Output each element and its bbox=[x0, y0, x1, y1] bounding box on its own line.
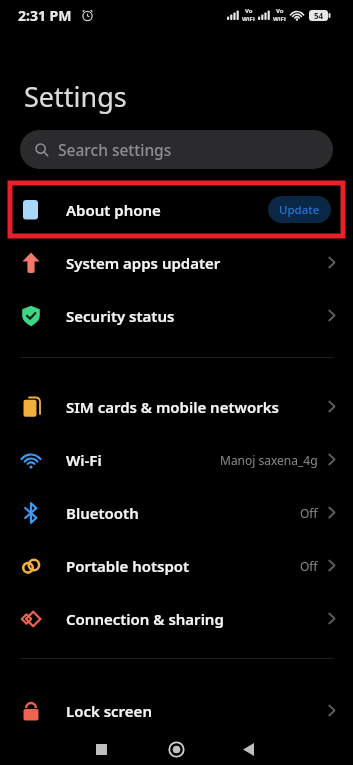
button[interactable]: Security status bbox=[0, 289, 353, 342]
staticText: Security status bbox=[66, 306, 175, 326]
staticText: 2:31 PM bbox=[18, 6, 72, 25]
button[interactable]: Search settings bbox=[20, 130, 333, 169]
button[interactable]: Connection & sharing bbox=[0, 592, 353, 645]
staticText: Connection & sharing bbox=[66, 609, 224, 629]
staticText: Update bbox=[279, 202, 320, 218]
staticText: Manoj saxena_4g bbox=[220, 452, 318, 468]
staticText: Search settings bbox=[58, 139, 172, 160]
staticText: System apps updater bbox=[66, 253, 221, 273]
staticText: Settings bbox=[24, 78, 127, 115]
staticText: Lock screen bbox=[66, 701, 152, 721]
staticText: Off bbox=[300, 505, 318, 521]
staticText: Portable hotspot bbox=[66, 556, 190, 576]
staticText: Vo bbox=[245, 7, 253, 15]
staticText: SIM cards & mobile networks bbox=[66, 397, 279, 417]
button[interactable]: Portable hotspot bbox=[0, 539, 353, 592]
staticText: Off bbox=[300, 558, 318, 574]
staticText: WiFi bbox=[273, 15, 286, 23]
staticText: WiFi bbox=[242, 15, 255, 23]
staticText: 54 bbox=[314, 10, 324, 21]
button[interactable]: About phone bbox=[0, 183, 353, 236]
button[interactable] bbox=[81, 737, 121, 765]
staticText: Bluetooth bbox=[66, 503, 139, 523]
button[interactable]: Lock screen bbox=[0, 684, 353, 737]
button[interactable]: Update bbox=[268, 196, 331, 223]
button[interactable]: System apps updater bbox=[0, 236, 353, 289]
button[interactable] bbox=[156, 737, 196, 765]
staticText: About phone bbox=[66, 200, 161, 220]
button[interactable]: Bluetooth bbox=[0, 486, 353, 539]
button[interactable]: SIM cards & mobile networks bbox=[0, 380, 353, 433]
staticText: Wi-Fi bbox=[66, 450, 102, 470]
staticText: Vo bbox=[276, 7, 284, 15]
button[interactable]: Wi-Fi bbox=[0, 433, 353, 486]
button[interactable] bbox=[228, 737, 268, 765]
